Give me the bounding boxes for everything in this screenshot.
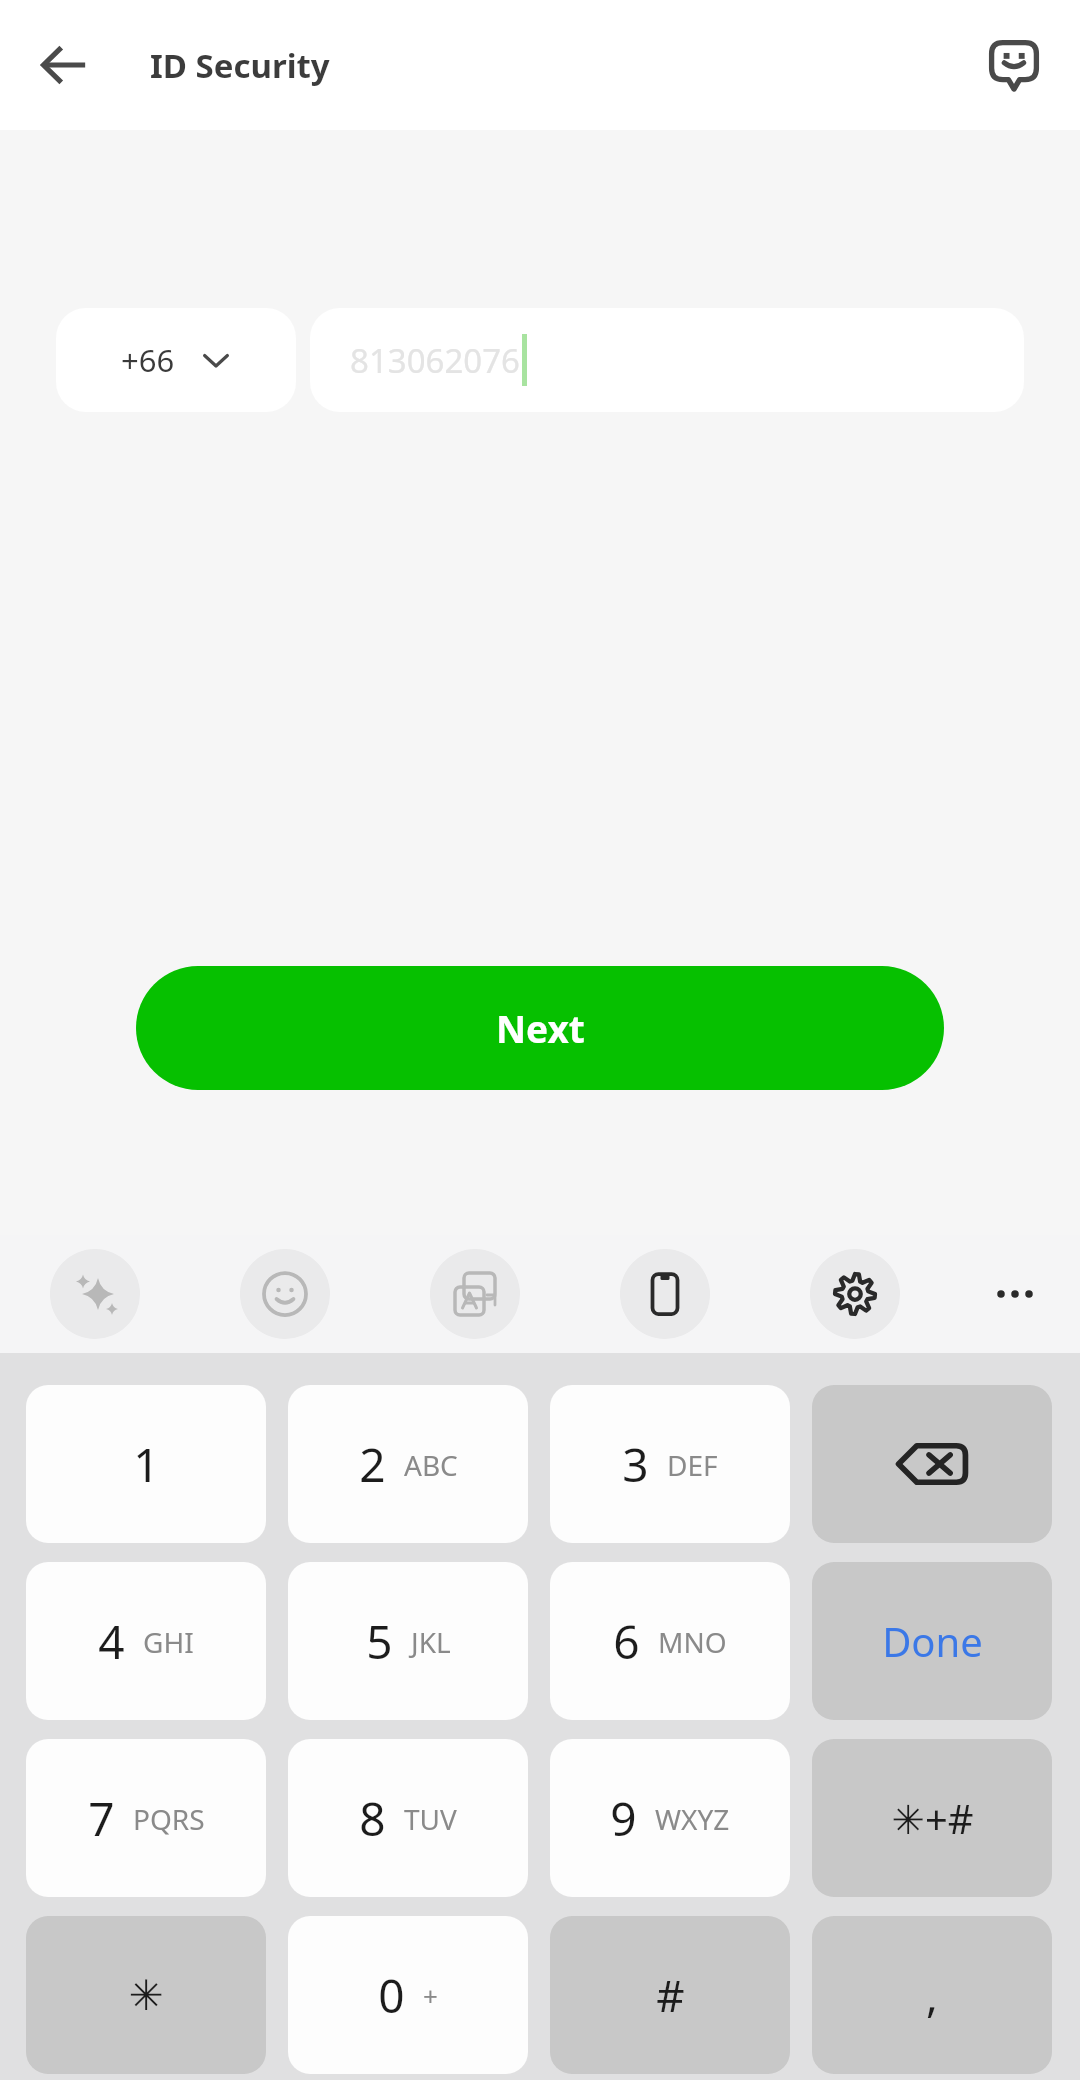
button[interactable]: Back: [24, 25, 104, 105]
staticText: +66: [121, 339, 175, 381]
staticText: +: [423, 1978, 438, 2013]
staticText: JKL: [411, 1623, 451, 1661]
button[interactable]: ,: [812, 1916, 1052, 2074]
button[interactable]: 9: [550, 1739, 790, 1897]
staticText: 3: [622, 1433, 649, 1496]
staticText: Done: [882, 1614, 983, 1668]
button[interactable]: Next: [136, 966, 944, 1090]
button[interactable]: More options: [970, 1249, 1060, 1339]
button[interactable]: 0: [288, 1916, 528, 2074]
button[interactable]: Clipboard: [620, 1249, 710, 1339]
button[interactable]: 813062076: [310, 308, 1024, 412]
button[interactable]: 3: [550, 1385, 790, 1543]
button[interactable]: 2: [288, 1385, 528, 1543]
staticText: #: [656, 1965, 685, 2025]
staticText: Next: [496, 1003, 585, 1053]
button[interactable]: ✳+#: [812, 1739, 1052, 1897]
staticText: 1: [133, 1433, 160, 1496]
button[interactable]: #: [550, 1916, 790, 2074]
staticText: ✳+#: [891, 1791, 974, 1845]
button[interactable]: Done: [812, 1562, 1052, 1720]
staticText: 5: [366, 1610, 393, 1673]
button[interactable]: 8: [288, 1739, 528, 1897]
staticText: 8: [359, 1787, 386, 1850]
staticText: 6: [613, 1610, 640, 1673]
button[interactable]: Backspace: [812, 1385, 1052, 1543]
staticText: WXYZ: [655, 1800, 730, 1838]
staticText: DEF: [667, 1446, 718, 1484]
button[interactable]: Translate: [430, 1249, 520, 1339]
staticText: PQRS: [133, 1800, 205, 1838]
button[interactable]: Keyboard settings: [810, 1249, 900, 1339]
button[interactable]: 4: [26, 1562, 266, 1720]
staticText: 4: [98, 1610, 125, 1673]
button[interactable]: ✳: [26, 1916, 266, 2074]
button[interactable]: AI suggestions: [50, 1249, 140, 1339]
button[interactable]: Chat support: [972, 23, 1056, 107]
staticText: ID Security: [150, 43, 330, 88]
button[interactable]: 5: [288, 1562, 528, 1720]
staticText: 0: [378, 1964, 405, 2027]
staticText: ABC: [404, 1446, 458, 1484]
staticText: 813062076: [350, 338, 520, 383]
button[interactable]: Emoji: [240, 1249, 330, 1339]
staticText: MNO: [658, 1623, 727, 1661]
button[interactable]: 6: [550, 1562, 790, 1720]
button[interactable]: 7: [26, 1739, 266, 1897]
staticText: 7: [88, 1787, 115, 1850]
staticText: ,: [926, 1965, 938, 2025]
staticText: GHI: [143, 1623, 194, 1661]
staticText: 2: [359, 1433, 386, 1496]
staticText: 9: [610, 1787, 637, 1850]
staticText: ✳: [128, 1971, 164, 2020]
button[interactable]: +66: [56, 308, 296, 412]
button[interactable]: 1: [26, 1385, 266, 1543]
staticText: TUV: [404, 1800, 457, 1838]
